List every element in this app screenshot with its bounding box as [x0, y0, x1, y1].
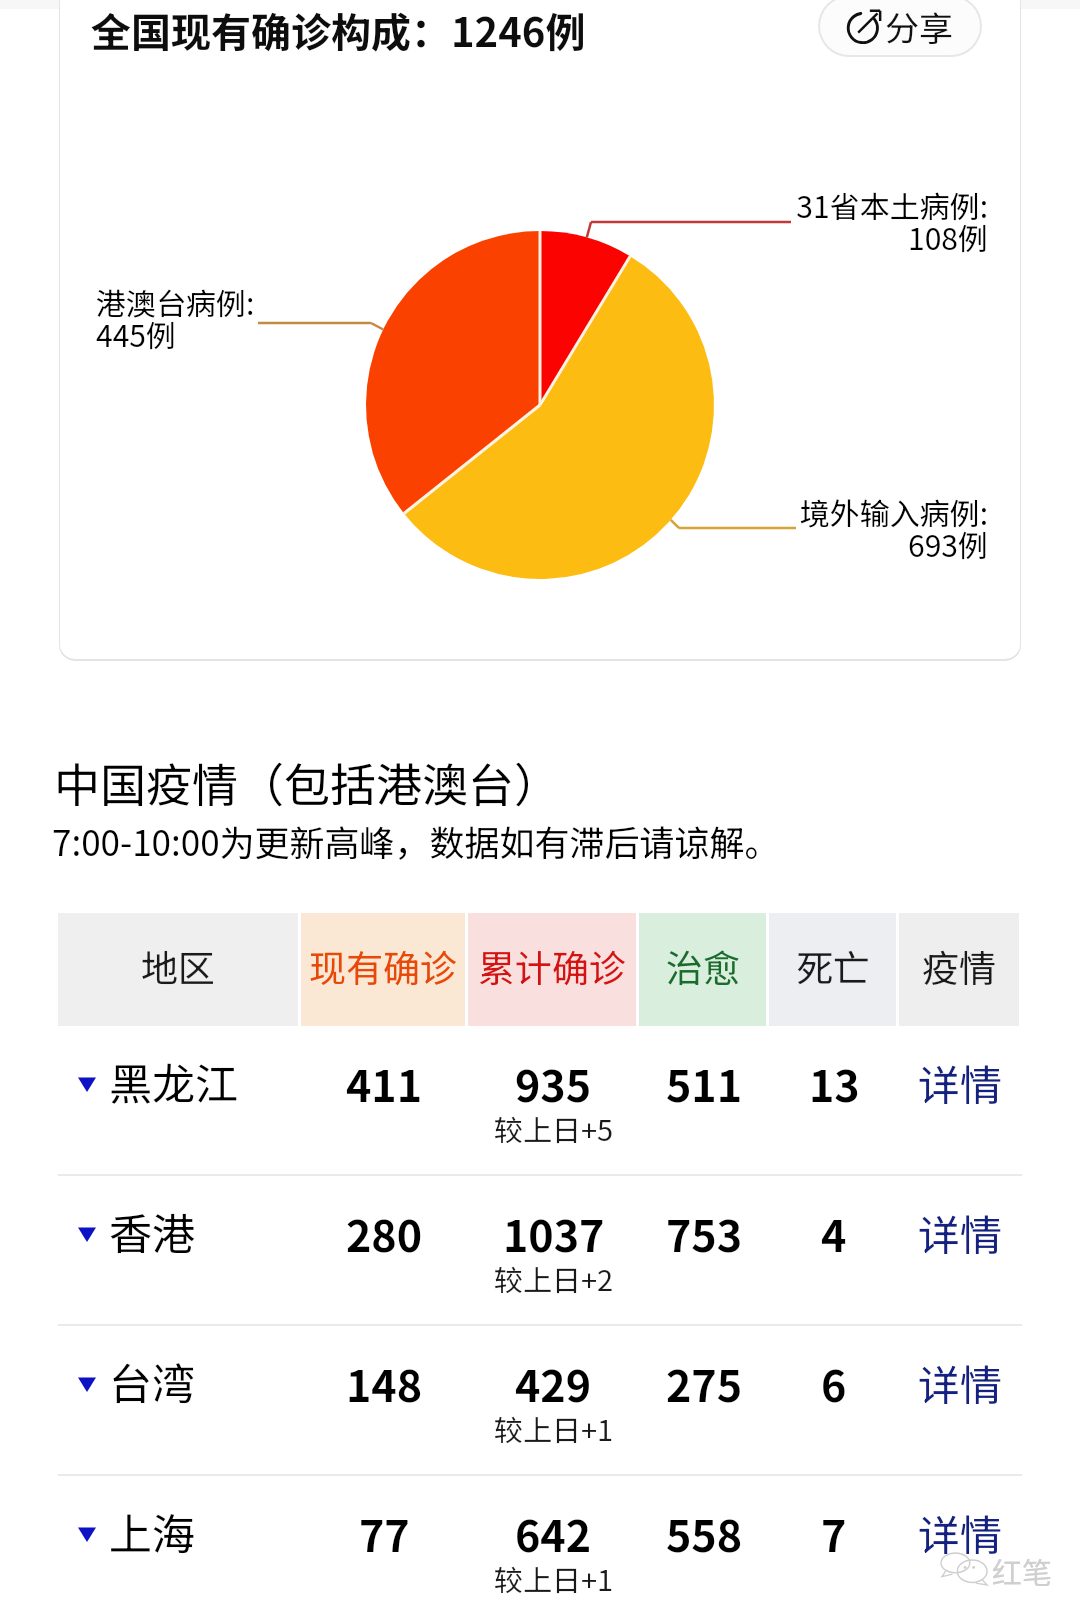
staticText: 全国现有确诊构成：1246例 [91, 1, 586, 59]
staticText: 较上日+1 [494, 1557, 614, 1599]
staticText: 详情 [918, 1502, 1003, 1562]
button[interactable]: 台湾 [58, 1328, 1022, 1474]
staticText: 7 [821, 1502, 847, 1562]
button[interactable]: 详情 [899, 1202, 1022, 1262]
button[interactable]: 香港 [58, 1178, 1022, 1324]
staticText: 511 [666, 1052, 743, 1112]
staticText: 935 [515, 1052, 592, 1112]
staticText: 753 [666, 1202, 743, 1262]
staticText: 现有确诊 [309, 939, 457, 991]
staticText: 详情 [918, 1052, 1003, 1112]
button[interactable]: 详情 [899, 1502, 1022, 1562]
staticText: 7:00-10:00为更新高峰，数据如有滞后请谅解。 [52, 815, 780, 866]
staticText: 275 [666, 1352, 743, 1412]
button[interactable]: 分享 [820, 0, 980, 55]
staticText: 详情 [918, 1202, 1003, 1262]
button[interactable]: 上海 [58, 1478, 1022, 1614]
staticText: 558 [666, 1502, 743, 1562]
staticText: 411 [346, 1052, 423, 1112]
staticText: 13 [809, 1052, 860, 1112]
staticText: 31省本土病例: 108例 [788, 183, 988, 259]
staticText: 地区 [141, 939, 215, 991]
staticText: 4 [821, 1202, 847, 1262]
staticText: 死亡 [796, 939, 870, 991]
staticText: 详情 [918, 1352, 1003, 1412]
staticText: 280 [346, 1202, 423, 1262]
staticText: 较上日+1 [494, 1407, 614, 1449]
staticText: 6 [821, 1352, 847, 1412]
button[interactable]: 详情 [899, 1052, 1022, 1112]
staticText: 境外输入病例: 693例 [788, 490, 988, 566]
staticText: 黑龙江 [109, 1050, 238, 1110]
staticText: 上海 [109, 1500, 195, 1560]
staticText: 642 [515, 1502, 592, 1562]
staticText: 治愈 [666, 939, 740, 991]
staticText: 港澳台病例: 445例 [96, 280, 296, 356]
button[interactable]: 黑龙江 [58, 1028, 1022, 1174]
staticText: 分享 [885, 2, 953, 51]
staticText: 429 [515, 1352, 592, 1412]
staticText: 红笔 [992, 1549, 1052, 1592]
staticText: 中国疫情（包括港澳台） [54, 749, 560, 816]
staticText: 香港 [109, 1200, 195, 1260]
button[interactable]: 详情 [899, 1352, 1022, 1412]
staticText: 77 [359, 1502, 410, 1562]
staticText: 疫情 [922, 939, 996, 991]
staticText: 台湾 [109, 1350, 195, 1410]
staticText: 较上日+5 [494, 1107, 614, 1149]
staticText: 148 [346, 1352, 423, 1412]
staticText: 较上日+2 [494, 1257, 614, 1299]
staticText: 累计确诊 [478, 939, 626, 991]
staticText: 1037 [503, 1202, 605, 1262]
